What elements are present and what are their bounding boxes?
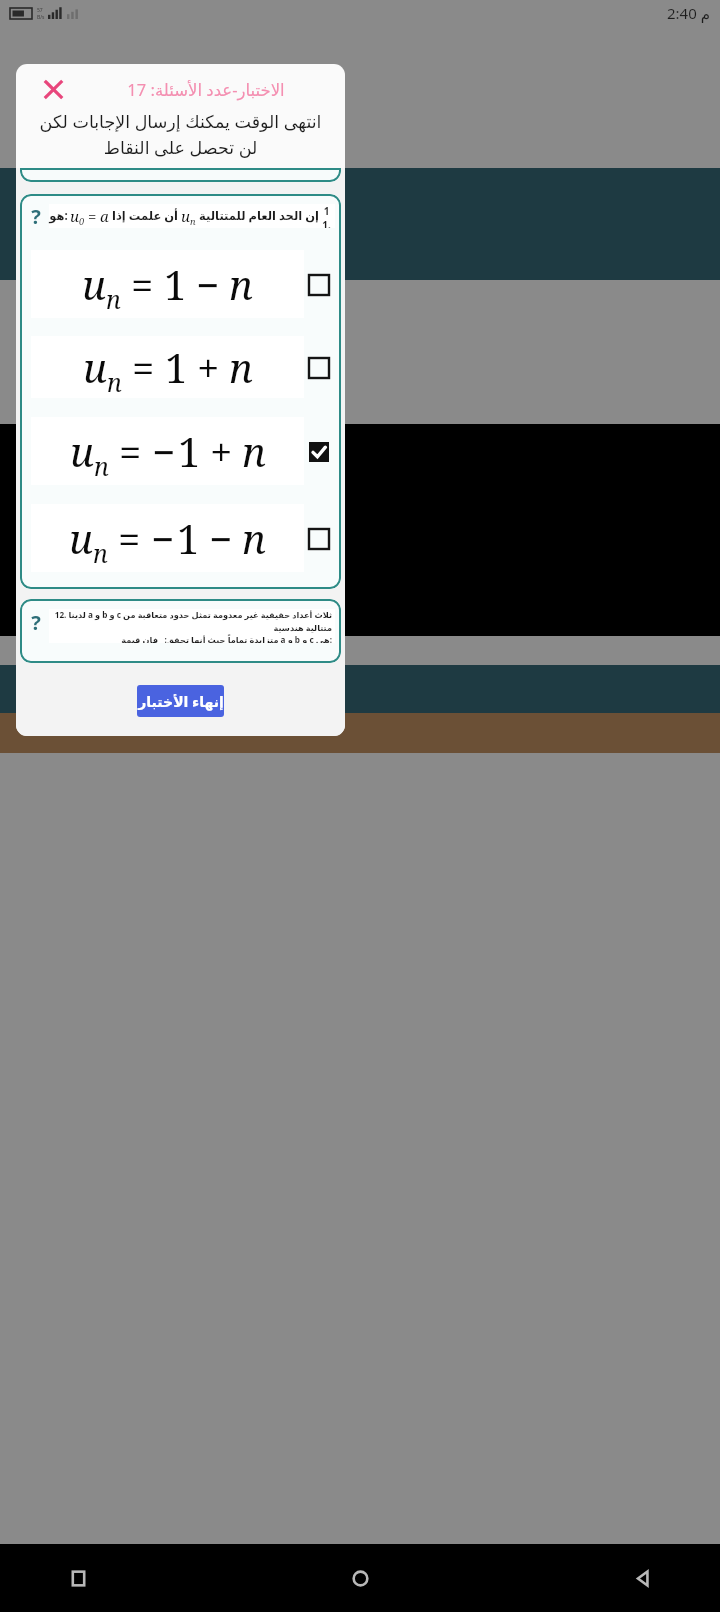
staticText: n	[190, 215, 196, 228]
staticText: أن علمت إذا	[112, 208, 178, 224]
staticText: =	[132, 340, 155, 394]
staticText: −	[209, 511, 233, 565]
staticText: u	[70, 424, 94, 478]
staticText: ?	[31, 203, 41, 229]
staticText: −	[152, 424, 176, 478]
staticText: n	[107, 365, 122, 399]
staticText: n	[242, 424, 266, 478]
staticText: م 2:40	[667, 3, 710, 23]
staticText: 1	[177, 511, 200, 565]
staticText: +	[197, 340, 220, 394]
staticText: 12. لدينا a و b و c ثلاث أعداد حقيقية غي…	[52, 609, 332, 634]
staticText: =	[131, 257, 154, 311]
staticText: a	[100, 206, 109, 226]
staticText: u	[181, 206, 190, 226]
staticText: إنهاء الأختبار	[138, 692, 224, 711]
staticText: n	[229, 257, 253, 311]
staticText: u	[82, 257, 106, 311]
staticText: انتهى الوقت يمكنك إرسال الإجابات لكن لن …	[32, 109, 329, 159]
staticText: 11.	[321, 204, 332, 228]
staticText: n	[94, 449, 109, 483]
staticText: n	[93, 536, 108, 570]
staticText: n	[106, 282, 121, 316]
staticText: −	[151, 511, 175, 565]
button[interactable]: Home	[340, 1558, 380, 1598]
button[interactable]: Select answer	[307, 527, 330, 550]
button[interactable]: Back	[622, 1558, 662, 1598]
staticText: u	[70, 206, 79, 226]
button[interactable]: u	[31, 250, 330, 318]
staticText: 1	[165, 340, 188, 394]
button[interactable]: u	[31, 417, 330, 485]
staticText: متزايدة تماماً حيث أنها تحقق: فإن قيمة a…	[52, 634, 332, 643]
staticText: u	[83, 340, 107, 394]
button[interactable]: إنهاء الأختبار	[137, 685, 224, 717]
staticText: n	[242, 511, 266, 565]
staticText: u	[69, 511, 93, 565]
button[interactable]: Close	[36, 72, 70, 106]
staticText: ?	[31, 609, 41, 635]
button[interactable]: u	[31, 336, 330, 398]
button[interactable]: Select answer	[307, 273, 330, 296]
staticText: 1	[164, 257, 187, 311]
staticText: −	[196, 257, 220, 311]
button[interactable]: Selected answer	[307, 440, 330, 463]
button[interactable]: Recent apps	[58, 1558, 98, 1598]
staticText: n	[229, 340, 253, 394]
staticText: =	[88, 206, 97, 226]
staticText: +	[210, 424, 233, 478]
staticText: 0	[79, 215, 85, 228]
staticText: =	[118, 511, 141, 565]
staticText: =	[119, 424, 142, 478]
button[interactable]: ?	[20, 599, 341, 663]
staticText: إن الحد العام للمتتالية	[199, 208, 319, 224]
button[interactable]: Select answer	[307, 356, 330, 379]
staticText: الاختبار-عدد الأسئلة: 17	[127, 78, 285, 100]
staticText: هو:	[49, 208, 68, 224]
staticText: 57 B/s	[37, 7, 45, 20]
staticText: 1	[178, 424, 201, 478]
button[interactable]: u	[31, 504, 330, 572]
